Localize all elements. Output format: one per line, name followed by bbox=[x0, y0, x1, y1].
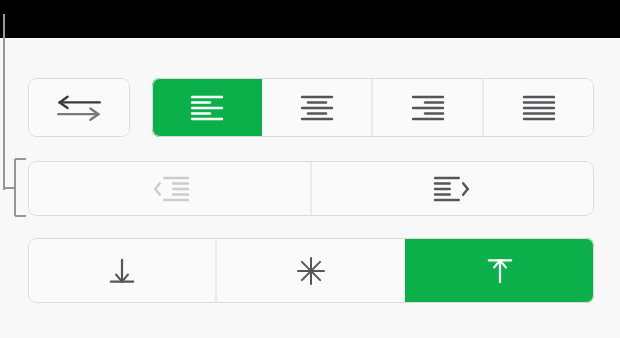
button[interactable]: Align bottom bbox=[28, 238, 216, 303]
button[interactable]: Align top bbox=[405, 238, 594, 303]
button[interactable]: Align right bbox=[372, 78, 483, 137]
button[interactable]: Increase indent bbox=[311, 161, 594, 216]
button[interactable]: Align left bbox=[152, 78, 262, 137]
button[interactable]: Text direction bbox=[28, 78, 130, 137]
button[interactable]: Justify bbox=[483, 78, 594, 137]
button[interactable]: Align center bbox=[262, 78, 372, 137]
button[interactable]: Align middle bbox=[216, 238, 405, 303]
button[interactable]: Decrease indent bbox=[28, 161, 311, 216]
